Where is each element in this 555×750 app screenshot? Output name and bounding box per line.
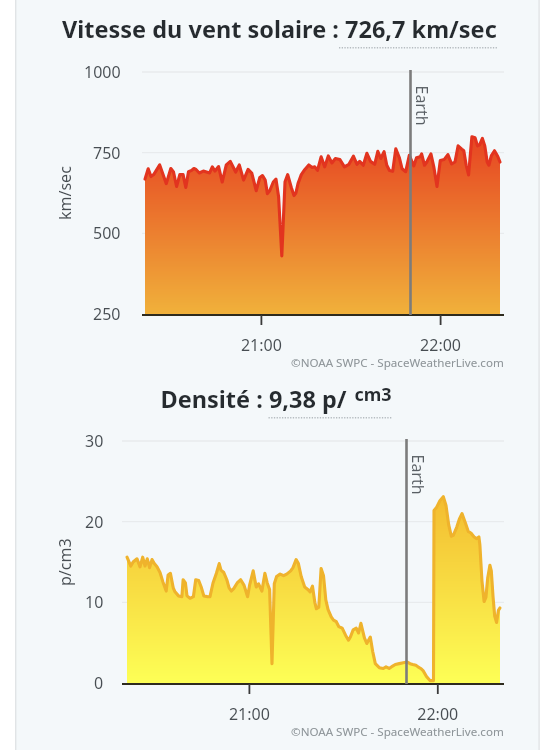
button[interactable]: Solar wind speed and density charts bbox=[0, 0, 555, 750]
other: Solar wind speed and density charts bbox=[0, 0, 555, 750]
